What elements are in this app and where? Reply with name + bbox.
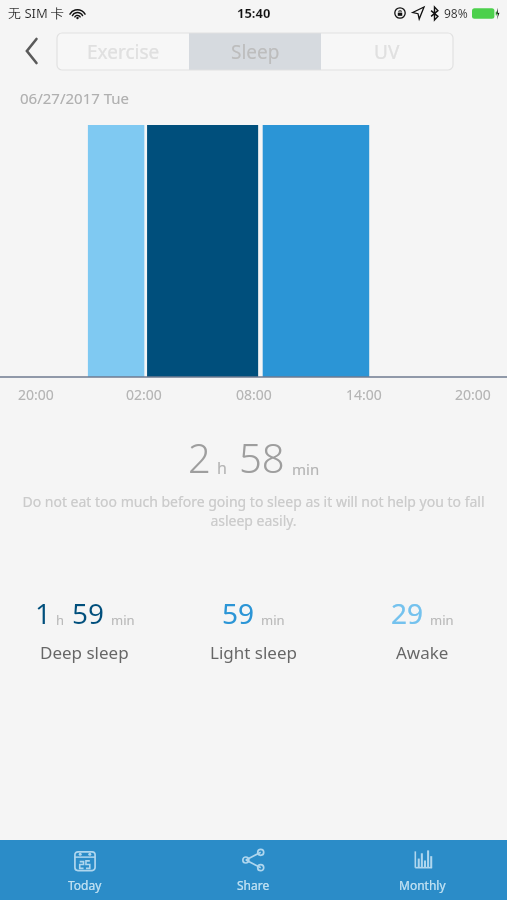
staticText: 59 (222, 594, 255, 632)
button[interactable]: 29 (338, 590, 507, 668)
staticText: 02:00 (126, 385, 162, 404)
staticText: min (261, 611, 285, 629)
staticText: Today (68, 877, 102, 893)
staticText: 20:00 (18, 385, 54, 404)
button[interactable]: 1 (0, 590, 169, 668)
staticText: h (217, 457, 227, 479)
button[interactable]: UV (321, 33, 453, 70)
staticText: Awake (396, 641, 449, 664)
staticText: 1 (35, 594, 52, 632)
staticText: Share (237, 877, 270, 893)
staticText: min (111, 611, 135, 629)
staticText: Exercise (87, 39, 160, 65)
staticText: Light sleep (210, 641, 297, 664)
staticText: Deep sleep (40, 641, 129, 664)
staticText: min (430, 611, 454, 629)
button[interactable]: Sleep (189, 33, 321, 70)
staticText: Do not eat too much before going to slee… (22, 492, 485, 530)
staticText: 98% (444, 5, 468, 21)
button[interactable]: Monthly (338, 840, 507, 900)
button[interactable]: Share (169, 840, 338, 900)
staticText: UV (374, 39, 400, 65)
staticText: 59 (72, 594, 105, 632)
staticText: 14:00 (346, 385, 382, 404)
button[interactable]: 59 (169, 590, 338, 668)
staticText: 29 (391, 594, 424, 632)
staticText: h (56, 611, 65, 629)
staticText: 15:40 (237, 4, 271, 22)
staticText: 2 (188, 430, 211, 484)
staticText: 08:00 (236, 385, 272, 404)
staticText: Sleep (231, 39, 280, 65)
staticText: Monthly (399, 877, 446, 893)
button[interactable]: Exercise (57, 33, 189, 70)
staticText: 58 (239, 430, 285, 484)
staticText: 06/27/2017 Tue (20, 88, 130, 108)
button[interactable]: Today (0, 840, 169, 900)
staticText: 无 SIM 卡 (8, 4, 65, 22)
staticText: 20:00 (455, 385, 491, 404)
button[interactable]: Back (14, 33, 50, 69)
staticText: min (292, 459, 320, 479)
